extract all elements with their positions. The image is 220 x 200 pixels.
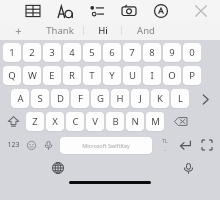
button[interactable]: And bbox=[122, 21, 169, 40]
button[interactable]: 2 bbox=[23, 43, 41, 62]
staticText: 3 bbox=[49, 46, 55, 59]
button[interactable]: Next bbox=[197, 91, 213, 107]
button[interactable]: O bbox=[163, 66, 181, 85]
staticText: 1 bbox=[9, 46, 15, 59]
button[interactable]: G bbox=[91, 89, 109, 108]
staticText: R bbox=[69, 69, 75, 82]
button[interactable]: V bbox=[86, 112, 104, 131]
staticText: + bbox=[15, 23, 22, 38]
button[interactable]: N bbox=[126, 112, 144, 131]
staticText: M bbox=[151, 115, 160, 128]
button[interactable]: Thank bbox=[36, 21, 83, 40]
staticText: P bbox=[189, 69, 195, 82]
staticText: J bbox=[139, 92, 142, 105]
staticText: 8 bbox=[149, 46, 155, 59]
staticText: X bbox=[52, 115, 58, 128]
staticText: Hi bbox=[98, 24, 108, 37]
button[interactable]: H bbox=[111, 89, 129, 108]
staticText: D bbox=[57, 92, 64, 105]
staticText: 0 bbox=[189, 46, 195, 59]
button[interactable]: Change language bbox=[50, 160, 66, 176]
staticText: 4 bbox=[69, 46, 75, 59]
staticText: And bbox=[137, 24, 155, 37]
button[interactable]: E bbox=[43, 66, 61, 85]
button[interactable]: 1 bbox=[3, 43, 21, 62]
button[interactable]: Q bbox=[3, 66, 21, 85]
staticText: O bbox=[168, 69, 176, 82]
button[interactable]: 4 bbox=[63, 43, 81, 62]
button[interactable]: Stickers bbox=[152, 2, 170, 20]
button[interactable]: C bbox=[66, 112, 84, 131]
button[interactable]: 123 bbox=[5, 137, 22, 153]
staticText: B bbox=[112, 115, 119, 128]
staticText: Thank bbox=[46, 24, 74, 37]
staticText: V bbox=[92, 115, 98, 128]
staticText: TL bbox=[162, 138, 168, 145]
staticText: Z bbox=[32, 115, 38, 128]
staticText: 6 bbox=[109, 46, 115, 59]
button[interactable]: Dictation bbox=[180, 160, 196, 176]
button[interactable]: Emoji bbox=[24, 138, 38, 152]
button[interactable]: K bbox=[151, 89, 169, 108]
button[interactable]: M bbox=[146, 112, 164, 131]
button[interactable]: Z bbox=[26, 112, 44, 131]
staticText: N bbox=[131, 115, 139, 128]
staticText: H bbox=[116, 92, 124, 105]
button[interactable]: Clipboard bbox=[24, 2, 42, 20]
button[interactable]: Add word bbox=[0, 21, 36, 40]
staticText: F bbox=[78, 92, 83, 105]
button[interactable]: 3 bbox=[43, 43, 61, 62]
button[interactable]: W bbox=[23, 66, 41, 85]
button[interactable]: Resize keyboard bbox=[199, 137, 215, 153]
button[interactable]: 9 bbox=[163, 43, 181, 62]
staticText: 9 bbox=[169, 46, 175, 59]
button[interactable]: S bbox=[31, 89, 49, 108]
button[interactable]: X bbox=[46, 112, 64, 131]
button[interactable]: F bbox=[71, 89, 89, 108]
button[interactable]: A bbox=[11, 89, 29, 108]
button[interactable]: Return bbox=[176, 136, 194, 154]
staticText: T bbox=[89, 69, 95, 82]
button[interactable]: P bbox=[183, 66, 201, 85]
staticText: Y bbox=[109, 69, 115, 82]
button[interactable]: Settings list bbox=[88, 2, 106, 20]
button[interactable]: 6 bbox=[103, 43, 121, 62]
staticText: L bbox=[178, 92, 183, 105]
staticText: G bbox=[97, 92, 104, 105]
staticText: Microsoft SwiftKey bbox=[82, 142, 130, 149]
button[interactable]: Text formatting bbox=[56, 2, 74, 20]
button[interactable]: R bbox=[63, 66, 81, 85]
button[interactable]: Microsoft SwiftKey bbox=[60, 137, 152, 154]
staticText: 123 bbox=[7, 140, 20, 150]
button[interactable]: Y bbox=[103, 66, 121, 85]
button[interactable]: Shift bbox=[3, 112, 23, 131]
button[interactable]: Backspace bbox=[169, 112, 191, 131]
staticText: 5 bbox=[89, 46, 95, 59]
button[interactable]: 7 bbox=[123, 43, 141, 62]
staticText: U bbox=[129, 69, 136, 82]
staticText: C bbox=[72, 115, 79, 128]
button[interactable]: D bbox=[51, 89, 69, 108]
staticText: I bbox=[150, 69, 154, 82]
button[interactable]: U bbox=[123, 66, 141, 85]
staticText: S bbox=[37, 92, 43, 105]
button[interactable]: 0 bbox=[183, 43, 201, 62]
button[interactable]: T bbox=[83, 66, 101, 85]
button[interactable]: I bbox=[143, 66, 161, 85]
staticText: 7 bbox=[129, 46, 135, 59]
staticText: 2 bbox=[29, 46, 35, 59]
button[interactable]: Camera bbox=[120, 2, 138, 20]
staticText: E bbox=[49, 69, 55, 82]
button[interactable]: 5 bbox=[83, 43, 101, 62]
button[interactable]: Symbols bbox=[158, 137, 172, 153]
button[interactable]: Voice input bbox=[41, 138, 55, 152]
button[interactable]: J bbox=[131, 89, 149, 108]
staticText: K bbox=[157, 92, 163, 105]
staticText: A bbox=[17, 92, 24, 105]
button[interactable]: Close bbox=[192, 2, 210, 20]
button[interactable]: L bbox=[171, 89, 189, 108]
button[interactable]: 8 bbox=[143, 43, 161, 62]
button[interactable]: B bbox=[106, 112, 124, 131]
button[interactable]: Hi bbox=[84, 21, 121, 40]
staticText: . bbox=[164, 145, 166, 153]
